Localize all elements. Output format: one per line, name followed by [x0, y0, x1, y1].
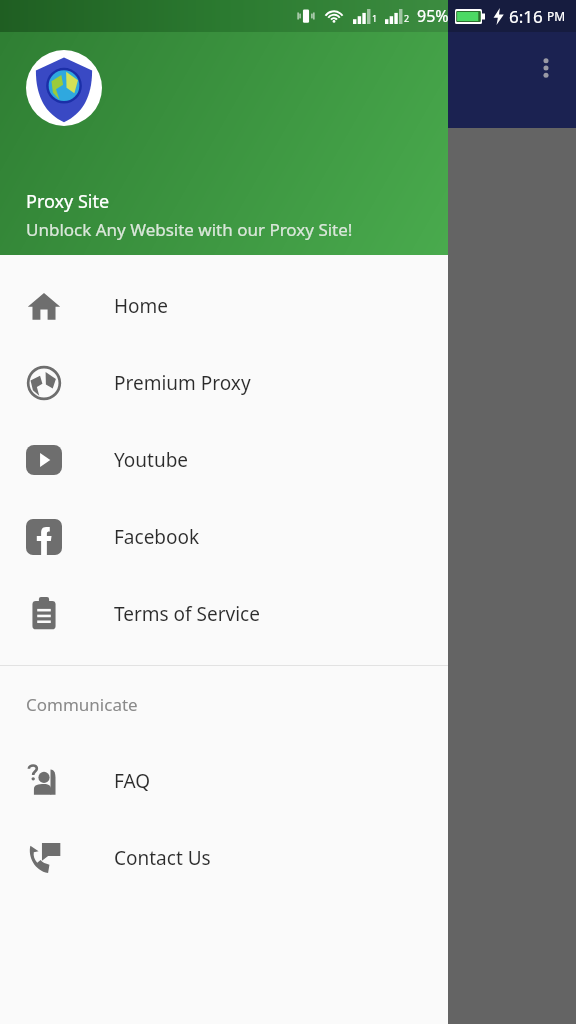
button[interactable]: FAQ [0, 742, 448, 819]
button[interactable]: Youtube [0, 421, 448, 498]
other: Home [26, 288, 62, 324]
other: Facebook [26, 519, 62, 555]
staticText: Terms of Service [114, 601, 260, 627]
staticText: Youtube [114, 447, 189, 473]
staticText: FAQ [114, 768, 151, 794]
button[interactable]: Terms of Service [0, 575, 448, 652]
staticText: Premium Proxy [114, 370, 251, 396]
staticText: PM [547, 8, 566, 24]
staticText: Communicate [26, 693, 138, 716]
staticText: 95% [417, 5, 449, 27]
other: Youtube [26, 445, 62, 475]
staticText: 2 [404, 12, 410, 24]
staticText: Facebook [114, 524, 200, 550]
staticText: Unblock Any Website with our Proxy Site! [26, 218, 353, 241]
other: Contact Us [27, 841, 61, 875]
button[interactable]: Home [0, 267, 448, 344]
staticText: 1 [372, 12, 378, 24]
button[interactable]: Contact Us [0, 819, 448, 896]
staticText: Home [114, 293, 169, 319]
button[interactable]: Facebook [0, 498, 448, 575]
button[interactable]: Premium Proxy [0, 344, 448, 421]
other: FAQ [26, 763, 62, 799]
other: Premium Proxy [26, 365, 62, 401]
staticText: Contact Us [114, 845, 211, 871]
other: Terms of Service [27, 597, 61, 631]
staticText: Proxy Site [26, 189, 110, 214]
button[interactable]: More options [522, 44, 570, 92]
staticText: 6:16 [509, 5, 543, 28]
